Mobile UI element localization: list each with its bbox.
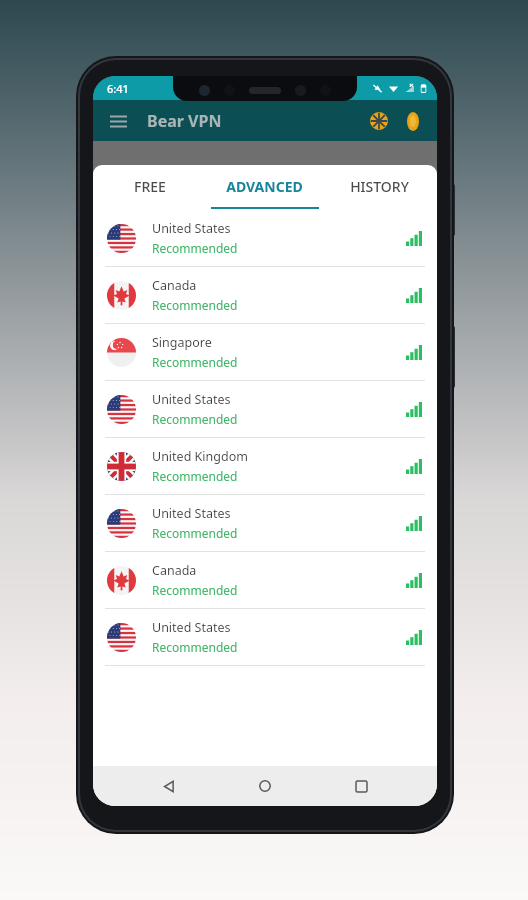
staticText: United States: [152, 220, 231, 237]
staticText: Recommended: [152, 354, 238, 370]
staticText: United States: [152, 619, 231, 636]
button[interactable]: ADVANCED: [207, 165, 322, 207]
staticText: Recommended: [152, 582, 238, 598]
staticText: Recommended: [152, 639, 238, 655]
staticText: United Kingdom: [152, 448, 248, 465]
button[interactable]: Rewards: [367, 109, 391, 133]
button[interactable]: Canada: [93, 267, 437, 324]
staticText: Singapore: [152, 334, 212, 351]
button[interactable]: Singapore: [93, 324, 437, 381]
staticText: Recommended: [152, 297, 238, 313]
staticText: United States: [152, 505, 231, 522]
staticText: 6:41: [107, 81, 129, 96]
button[interactable]: HISTORY: [322, 165, 437, 207]
staticText: Recommended: [152, 525, 238, 541]
staticText: HISTORY: [350, 177, 409, 196]
button[interactable]: Home: [245, 766, 285, 806]
staticText: ADVANCED: [226, 177, 303, 196]
staticText: United States: [152, 391, 231, 408]
button[interactable]: FREE: [93, 165, 207, 207]
button[interactable]: Recents: [341, 766, 381, 806]
staticText: Bear VPN: [147, 110, 222, 132]
button[interactable]: Canada: [93, 552, 437, 609]
staticText: Canada: [152, 562, 197, 579]
button[interactable]: United States: [93, 609, 437, 666]
button[interactable]: Back: [149, 766, 189, 806]
button[interactable]: United States: [93, 381, 437, 438]
button[interactable]: Menu: [101, 104, 135, 138]
button[interactable]: United States: [93, 495, 437, 552]
button[interactable]: United States: [93, 210, 437, 267]
button[interactable]: United Kingdom: [93, 438, 437, 495]
staticText: Recommended: [152, 468, 238, 484]
staticText: Canada: [152, 277, 197, 294]
staticText: Recommended: [152, 411, 238, 427]
button[interactable]: Premium: [401, 109, 425, 133]
staticText: Recommended: [152, 240, 238, 256]
staticText: FREE: [134, 177, 166, 196]
